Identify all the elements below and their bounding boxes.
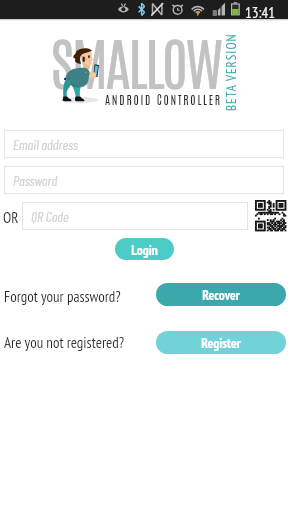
staticText: Login — [131, 241, 158, 258]
staticText: OR — [3, 208, 19, 227]
staticText: Register — [201, 334, 241, 351]
button[interactable]: Register — [156, 331, 286, 354]
staticText: Password — [13, 172, 58, 189]
button[interactable]: Scan QR code — [255, 200, 286, 231]
staticText: QR Code — [31, 208, 69, 225]
button[interactable]: Forgot your password? — [4, 287, 121, 306]
staticText: 13:41 — [245, 3, 276, 22]
button[interactable]: Email address — [4, 130, 284, 158]
staticText: Email address — [13, 136, 78, 153]
staticText: Recover — [202, 286, 240, 303]
button[interactable]: QR Code — [22, 202, 248, 230]
staticText: SMALLOW — [51, 23, 221, 97]
button[interactable]: Are you not registered? — [4, 333, 125, 352]
button[interactable]: Password — [4, 166, 284, 194]
button[interactable]: Login — [115, 238, 174, 260]
button[interactable]: Recover — [156, 283, 286, 306]
staticText: BETA VERSION — [223, 33, 239, 111]
staticText: ANDROID CONTROLLER — [105, 92, 222, 107]
